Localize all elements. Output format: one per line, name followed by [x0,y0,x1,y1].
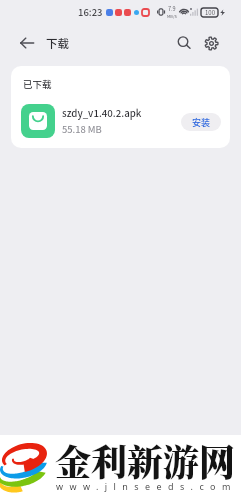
staticText: MB/S [167,13,177,19]
staticText: www.jlnseeds.com [56,480,237,492]
staticText: 55.18 MB [62,122,102,136]
staticText: szdy_v1.40.2.apk [62,106,142,120]
staticText: 100 [205,8,215,17]
staticText: 下载 [46,35,69,52]
button[interactable]: 安装 [181,113,221,131]
staticText: 金利新游网 [55,435,236,487]
staticText: 7.9 [168,5,176,13]
staticText: 安装 [192,116,211,129]
staticText: 16:23 [78,5,103,19]
staticText: 已下载 [23,77,52,91]
button[interactable]: Settings [193,25,229,61]
button[interactable]: Back [8,24,46,62]
button[interactable]: szdy_v1.40.2.apk [21,103,221,139]
button[interactable]: Search [167,26,201,60]
